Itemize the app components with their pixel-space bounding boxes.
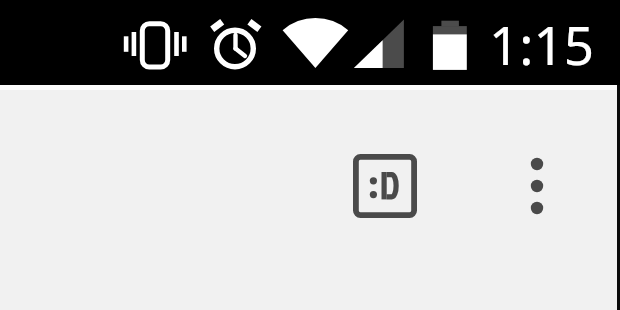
staticText: 1:15: [489, 8, 595, 80]
button[interactable]: More options: [513, 146, 561, 226]
button[interactable]: Insert emoji: [345, 146, 425, 226]
